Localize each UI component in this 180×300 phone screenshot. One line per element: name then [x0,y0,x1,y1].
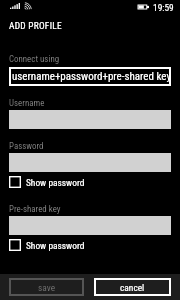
staticText: ADD PROFILE [9,20,62,31]
staticText: save [38,282,56,293]
staticText: 19:59 [153,2,174,13]
staticText: Show password [26,240,85,251]
button[interactable]: save [9,278,84,296]
staticText: Show password [26,177,85,188]
button[interactable]: username+password+pre-shared key [9,67,171,86]
staticText: Username [9,98,45,108]
button[interactable]: Show password [9,239,85,251]
staticText: username+password+pre-shared key [12,70,171,83]
staticText: cancel [120,282,145,293]
staticText: Pre-shared key [9,204,61,214]
button[interactable]: Show password [9,176,85,188]
staticText: Password [9,141,44,151]
staticText: Connect using [9,54,60,64]
button[interactable]: cancel [94,278,171,296]
